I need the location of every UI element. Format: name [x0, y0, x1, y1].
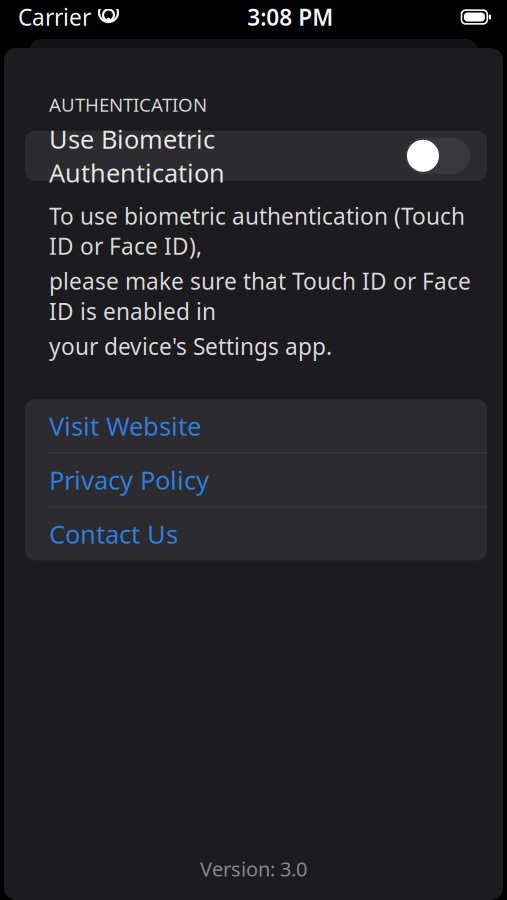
staticText: To use biometric authentication (Touch I…: [49, 201, 465, 261]
button[interactable]: Contact Us: [25, 507, 487, 560]
staticText: AUTHENTICATION: [49, 92, 207, 117]
staticText: Privacy Policy: [49, 463, 209, 497]
staticText: your device's Settings app.: [49, 331, 332, 361]
staticText: Visit Website: [49, 409, 201, 443]
button[interactable]: Privacy Policy: [25, 453, 487, 506]
button[interactable]: Use Biometric Authentication: [25, 131, 487, 181]
staticText: Contact Us: [49, 517, 178, 551]
staticText: 3:08 PM: [247, 2, 333, 32]
staticText: Carrier: [18, 2, 91, 32]
staticText: Use Biometric Authentication: [49, 122, 225, 189]
staticText: please make sure that Touch ID or Face I…: [49, 266, 471, 326]
button[interactable]: Visit Website: [25, 399, 487, 452]
staticText: Version: 3.0: [200, 855, 307, 882]
